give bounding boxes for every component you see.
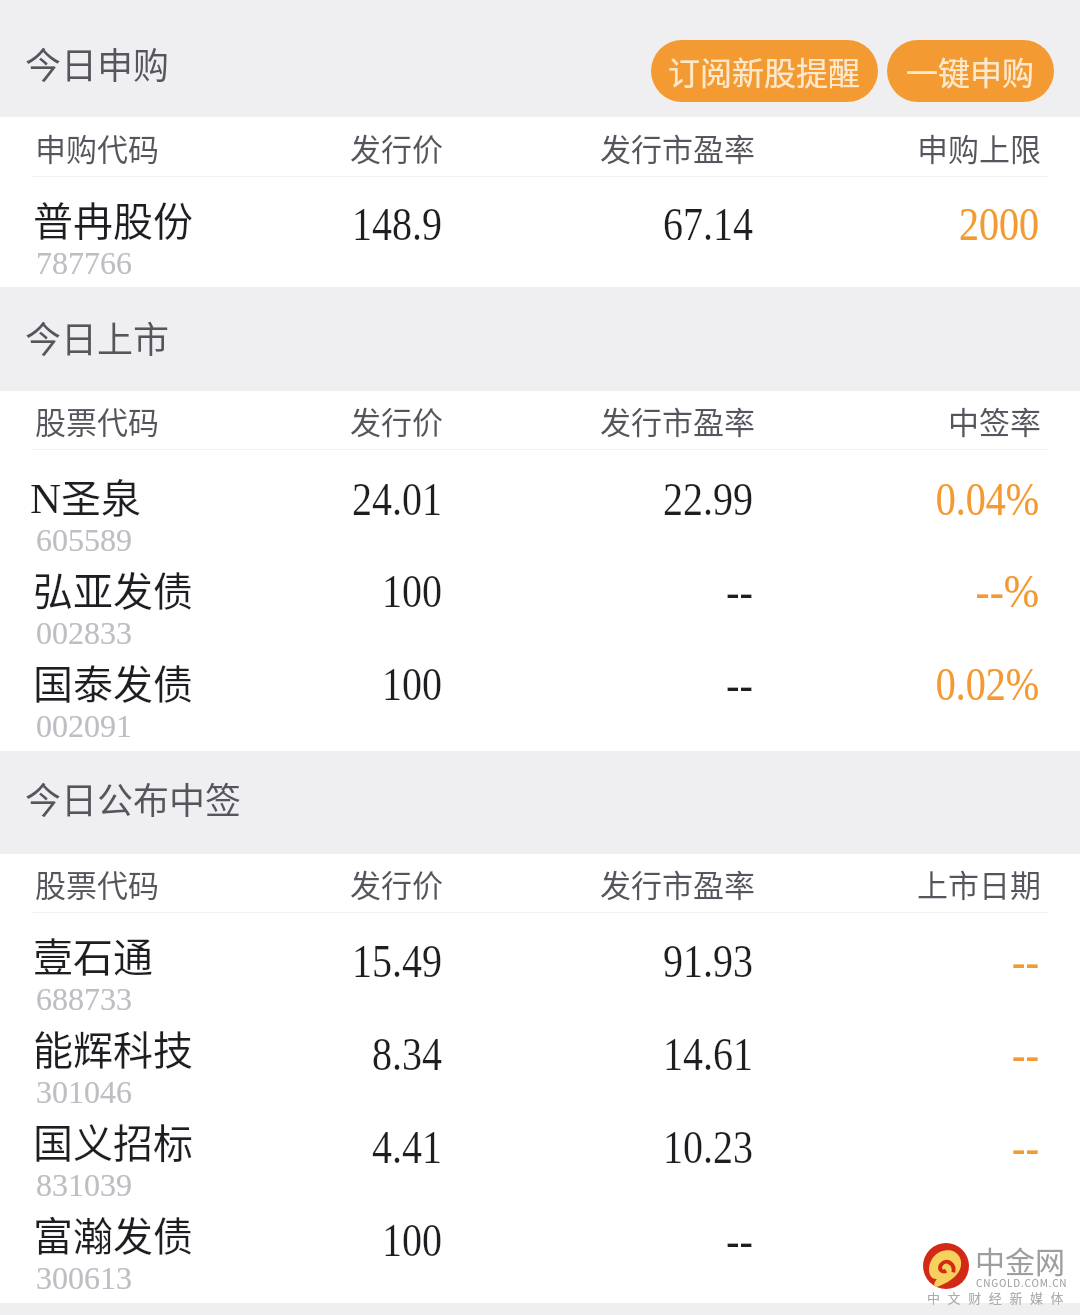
staticText: 688733 xyxy=(36,981,132,1016)
staticText: 787766 xyxy=(36,245,132,280)
staticText: 壹石通 xyxy=(33,926,153,984)
button[interactable] xyxy=(0,287,1080,391)
button[interactable]: 一键申购 xyxy=(887,40,1054,102)
staticText: 申购上限 xyxy=(917,125,1041,170)
staticText: 14.61 xyxy=(662,1029,753,1080)
button[interactable]: 弘亚发债 xyxy=(0,547,1080,640)
staticText: 24.01 xyxy=(351,474,442,525)
staticText: 股票代码 xyxy=(35,861,159,906)
staticText: -- xyxy=(726,659,753,710)
staticText: 一键申购 xyxy=(906,48,1035,94)
staticText: 100 xyxy=(382,1215,442,1266)
button[interactable]: 富瀚发债 xyxy=(0,1192,1080,1285)
staticText: CNGOLD.COM.CN xyxy=(976,1275,1068,1289)
staticText: 605589 xyxy=(36,522,132,557)
staticText: 15.49 xyxy=(351,936,442,987)
button[interactable] xyxy=(0,0,620,117)
staticText: 发行价 xyxy=(350,398,443,443)
staticText: 2000 xyxy=(959,199,1039,250)
button[interactable]: 普冉股份 xyxy=(0,177,1080,287)
staticText: 发行市盈率 xyxy=(600,861,755,906)
staticText: 0.02% xyxy=(935,659,1039,710)
staticText: 300613 xyxy=(36,1260,132,1295)
staticText: -- xyxy=(1012,1029,1039,1080)
button[interactable]: 壹石通 xyxy=(0,913,1080,1006)
staticText: 今日申购 xyxy=(25,37,170,89)
staticText: 831039 xyxy=(36,1167,132,1202)
staticText: 申购代码 xyxy=(35,125,159,170)
button[interactable]: 订阅新股提醒 xyxy=(651,40,878,102)
staticText: 今日上市 xyxy=(25,311,170,363)
staticText: 中文财经新媒体 xyxy=(927,1288,1072,1307)
staticText: 22.99 xyxy=(662,474,753,525)
staticText: 中金网 xyxy=(975,1238,1065,1281)
staticText: 发行价 xyxy=(350,125,443,170)
staticText: --% xyxy=(975,566,1039,617)
staticText: 富瀚发债 xyxy=(33,1205,193,1263)
staticText: 91.93 xyxy=(662,936,753,987)
staticText: 002091 xyxy=(36,708,132,743)
staticText: -- xyxy=(1012,936,1039,987)
staticText: 能辉科技 xyxy=(33,1019,193,1077)
staticText: 今日公布中签 xyxy=(25,772,242,824)
staticText: -- xyxy=(1012,1122,1039,1173)
button[interactable]: 国泰发债 xyxy=(0,640,1080,733)
other: 中金网 logo xyxy=(923,1243,969,1289)
staticText: -- xyxy=(726,566,753,617)
staticText: 上市日期 xyxy=(917,861,1041,906)
staticText: 0.04% xyxy=(935,474,1039,525)
staticText: 4.41 xyxy=(371,1122,442,1173)
staticText: 10.23 xyxy=(662,1122,753,1173)
staticText: 301046 xyxy=(36,1074,132,1109)
button[interactable]: 国义招标 xyxy=(0,1099,1080,1192)
staticText: -- xyxy=(726,1215,753,1266)
staticText: 002833 xyxy=(36,615,132,650)
staticText: 8.34 xyxy=(371,1029,442,1080)
staticText: 发行市盈率 xyxy=(600,398,755,443)
staticText: 发行市盈率 xyxy=(600,125,755,170)
staticText: 67.14 xyxy=(662,199,753,250)
staticText: 国义招标 xyxy=(33,1112,193,1170)
staticText: 148.9 xyxy=(351,199,442,250)
button[interactable] xyxy=(0,751,1080,854)
staticText: 股票代码 xyxy=(35,398,159,443)
staticText: 100 xyxy=(382,566,442,617)
staticText: 100 xyxy=(382,659,442,710)
staticText: 弘亚发债 xyxy=(33,560,193,618)
staticText: 普冉股份 xyxy=(33,190,193,248)
staticText: 中签率 xyxy=(948,398,1041,443)
staticText: 国泰发债 xyxy=(33,653,193,711)
staticText: N圣泉 xyxy=(30,467,142,525)
staticText: 发行价 xyxy=(350,861,443,906)
button[interactable]: 能辉科技 xyxy=(0,1006,1080,1099)
button[interactable]: N圣泉 xyxy=(0,454,1080,547)
staticText: 订阅新股提醒 xyxy=(668,48,861,94)
